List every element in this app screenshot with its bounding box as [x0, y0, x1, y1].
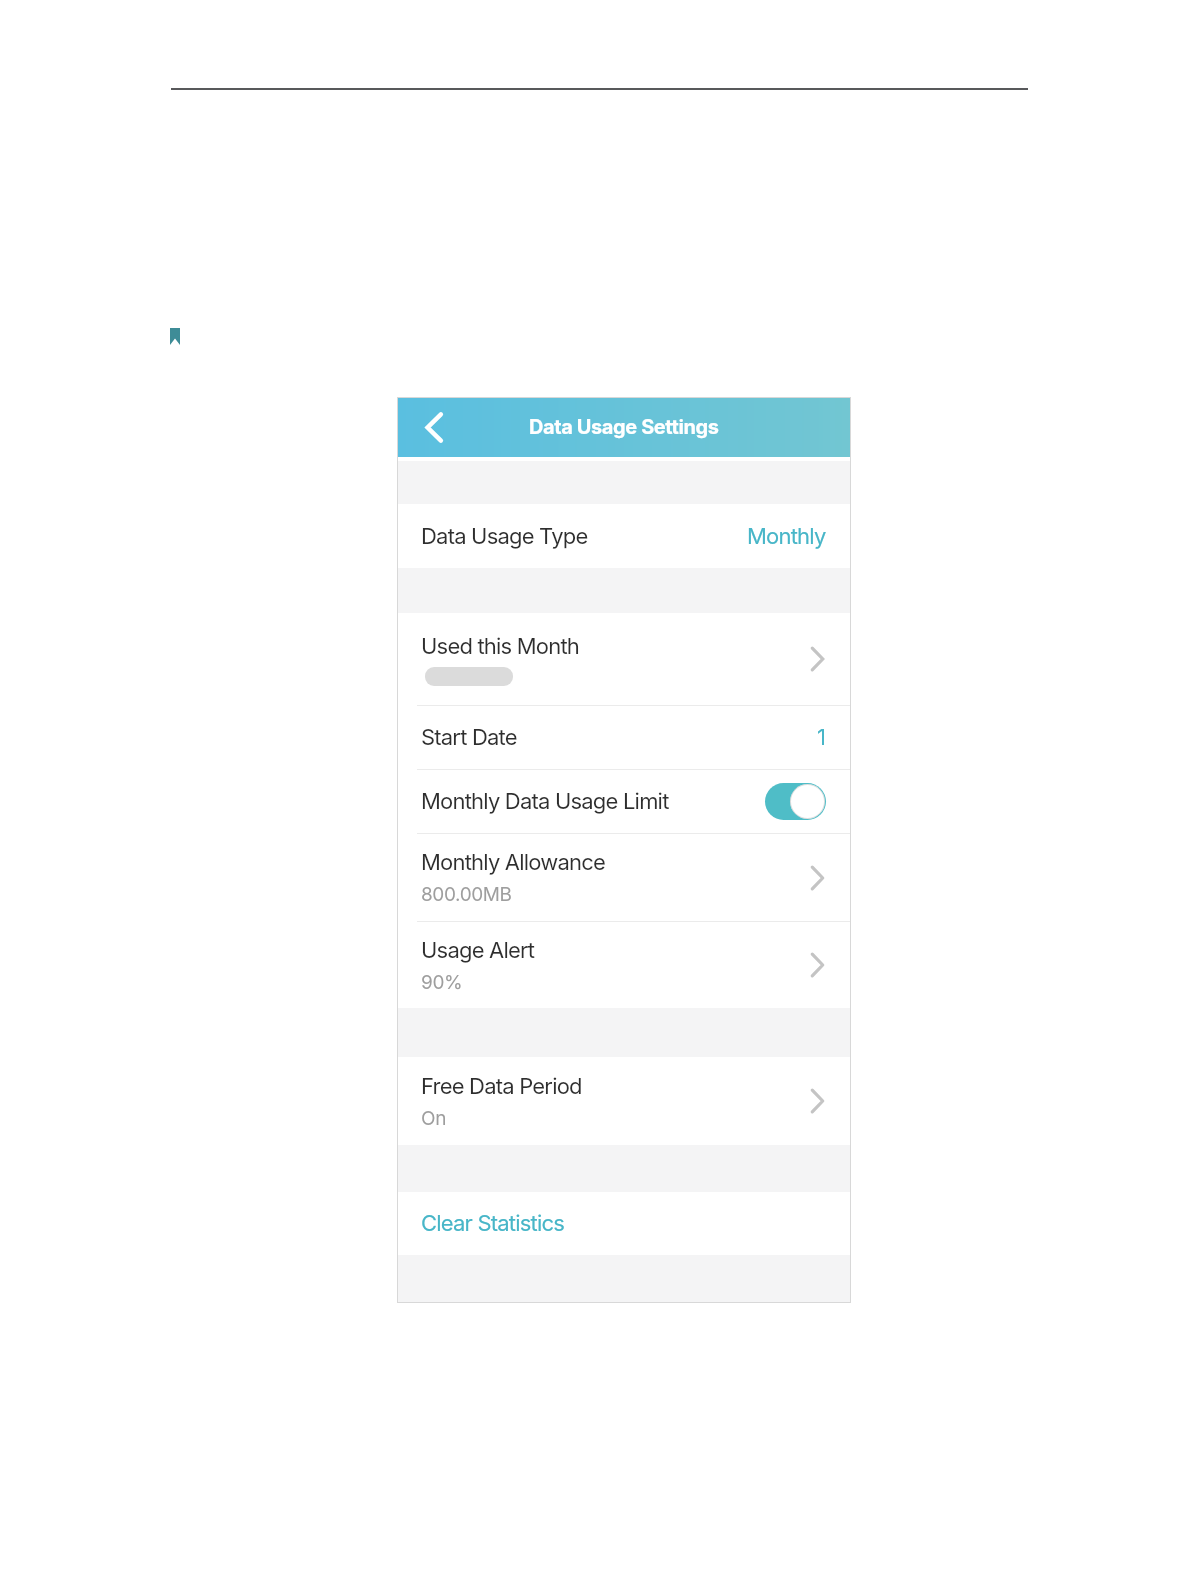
staticText: Monthly — [747, 523, 826, 550]
staticText: Monthly Allowance — [421, 849, 606, 876]
button[interactable]: Monthly Allowance — [397, 834, 851, 921]
staticText: Start Date — [421, 724, 517, 751]
button[interactable]: Start Date — [397, 706, 851, 769]
button[interactable] — [426, 413, 442, 442]
staticText: 800.00MB — [421, 883, 512, 906]
staticText: 1 — [817, 724, 826, 751]
button[interactable]: Usage Alert — [397, 922, 851, 1008]
button[interactable]: Clear Statistics — [397, 1192, 851, 1255]
staticText: Used this Month — [421, 633, 580, 660]
button[interactable]: Data Usage Type — [397, 504, 851, 568]
staticText: On — [421, 1107, 446, 1130]
staticText: Usage Alert — [421, 937, 535, 964]
staticText: 90% — [421, 971, 463, 994]
staticText: Data Usage Settings — [529, 415, 719, 439]
staticText: Data Usage Type — [421, 523, 588, 550]
button[interactable] — [765, 783, 826, 820]
staticText: Clear Statistics — [421, 1210, 565, 1237]
button[interactable]: Monthly Data Usage Limit — [397, 770, 851, 833]
button[interactable]: Used this Month — [397, 613, 851, 705]
staticText: Monthly Data Usage Limit — [421, 788, 669, 815]
staticText: Free Data Period — [421, 1073, 582, 1100]
button[interactable]: Free Data Period — [397, 1057, 851, 1145]
